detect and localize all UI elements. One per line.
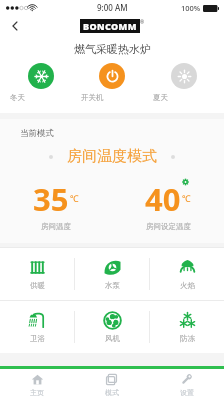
button[interactable]: Flame xyxy=(150,248,224,300)
staticText: 供暖 xyxy=(30,281,45,290)
button[interactable]: Water pump xyxy=(75,248,149,300)
button[interactable]: 40 xyxy=(112,178,224,231)
button[interactable]: Fan xyxy=(75,301,149,353)
staticText: ℃ xyxy=(182,192,191,204)
staticText: ® xyxy=(140,19,145,26)
button[interactable]: Anti-freeze xyxy=(150,301,224,353)
staticText: 燃气采暖热水炉 xyxy=(74,42,151,56)
button[interactable]: 设置 xyxy=(149,369,224,400)
staticText: 卫浴 xyxy=(30,334,45,343)
staticText: 风机 xyxy=(105,334,120,343)
staticText: 火焰 xyxy=(180,281,195,290)
staticText: 当前模式 xyxy=(20,128,54,139)
button[interactable]: Power xyxy=(81,60,143,102)
button[interactable]: Shower xyxy=(0,301,74,353)
button[interactable]: 主页 xyxy=(0,369,74,400)
button[interactable]: Winter mode xyxy=(10,60,72,102)
staticText: 房间温度 xyxy=(41,222,71,231)
staticText: 冬天 xyxy=(10,93,72,102)
staticText: 水泵 xyxy=(105,281,120,290)
button[interactable]: Back xyxy=(0,15,30,37)
staticText: 40 xyxy=(145,178,181,220)
staticText: 设置 xyxy=(180,388,194,397)
staticText: 100% xyxy=(181,3,201,13)
staticText: 夏天 xyxy=(153,93,215,102)
staticText: BONCOMM xyxy=(83,20,137,32)
staticText: 防冻 xyxy=(180,334,195,343)
button[interactable]: Heating xyxy=(0,248,74,300)
staticText: 主页 xyxy=(30,388,44,397)
staticText: 9:00 AM xyxy=(97,2,128,13)
staticText: 房间温度模式 xyxy=(67,147,157,166)
staticText: 35 xyxy=(33,178,69,220)
staticText: ℃ xyxy=(70,192,79,204)
button[interactable]: 模式 xyxy=(74,369,149,400)
staticText: 开关机 xyxy=(81,93,143,102)
staticText: 房间设定温度 xyxy=(146,222,191,231)
button[interactable]: 35 xyxy=(0,178,112,231)
staticText: 模式 xyxy=(105,388,119,397)
button[interactable]: Summer mode xyxy=(153,60,215,102)
